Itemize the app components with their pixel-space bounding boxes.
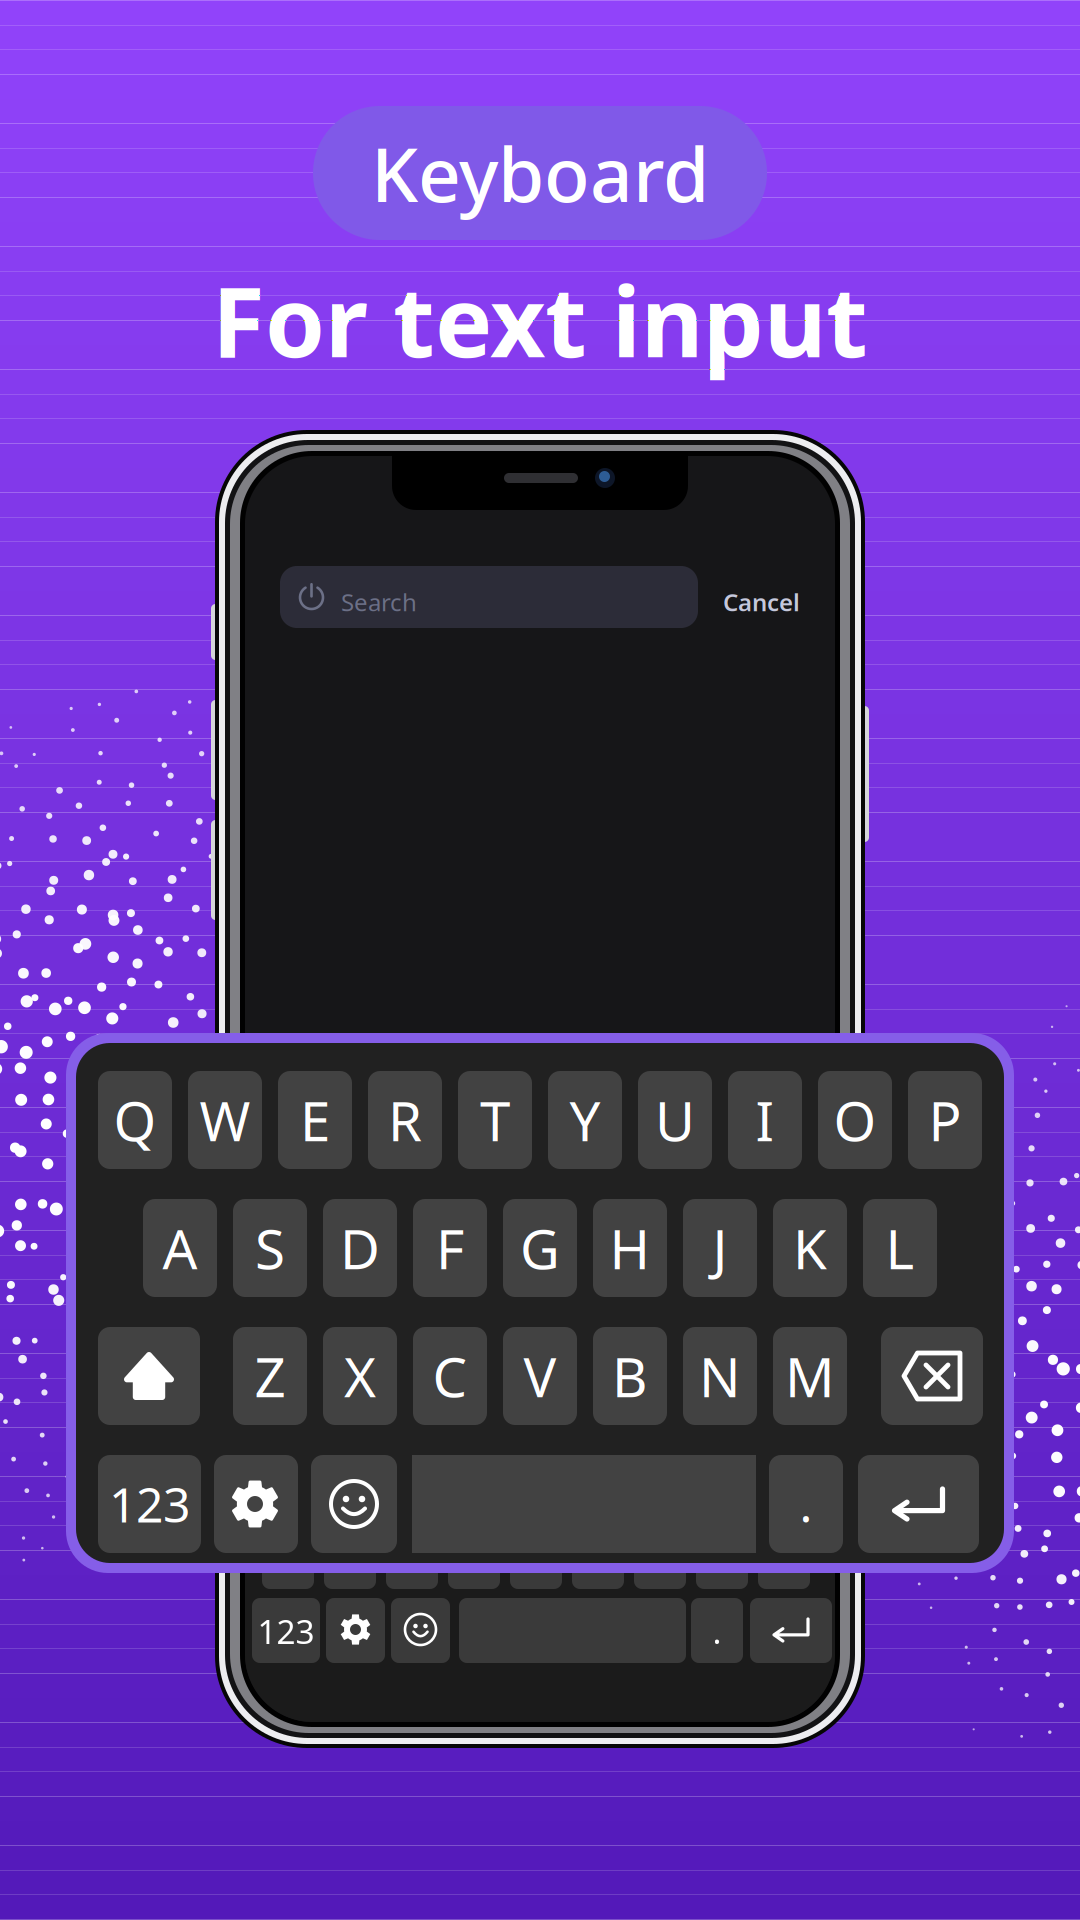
button[interactable]: F: [413, 1199, 487, 1297]
staticText: M: [785, 1340, 835, 1412]
button[interactable]: Settings: [214, 1455, 298, 1553]
button[interactable]: X: [323, 1327, 397, 1425]
staticText: Y: [569, 1084, 600, 1156]
staticText: C: [432, 1340, 467, 1412]
button[interactable]: T: [458, 1071, 532, 1169]
staticText: X: [344, 1340, 376, 1412]
button[interactable]: Z: [233, 1327, 307, 1425]
staticText: D: [340, 1212, 380, 1284]
staticText: B: [612, 1340, 648, 1412]
staticText: V: [523, 1340, 556, 1412]
button[interactable]: C: [413, 1327, 487, 1425]
button[interactable]: N: [683, 1327, 757, 1425]
button[interactable]: R: [368, 1071, 442, 1169]
staticText: H: [609, 1212, 650, 1284]
button[interactable]: S: [233, 1199, 307, 1297]
button[interactable]: A: [143, 1199, 217, 1297]
staticText: K: [793, 1212, 827, 1284]
button[interactable]: V: [503, 1327, 577, 1425]
button[interactable]: 123: [98, 1455, 201, 1553]
staticText: .: [712, 1609, 721, 1653]
staticText: J: [712, 1212, 727, 1284]
button[interactable]: O: [818, 1071, 892, 1169]
staticText: O: [833, 1084, 876, 1156]
staticText: Q: [113, 1084, 156, 1156]
button[interactable]: D: [323, 1199, 397, 1297]
button[interactable]: J: [683, 1199, 757, 1297]
button[interactable]: G: [503, 1199, 577, 1297]
button[interactable]: B: [593, 1327, 667, 1425]
staticText: Keyboard: [371, 123, 709, 223]
button[interactable]: Shift: [98, 1327, 200, 1425]
button[interactable]: Cancel: [723, 586, 819, 618]
button[interactable]: M: [773, 1327, 847, 1425]
button[interactable]: W: [188, 1071, 262, 1169]
staticText: N: [699, 1340, 741, 1412]
button[interactable]: Return: [858, 1455, 979, 1553]
staticText: .: [799, 1472, 812, 1536]
button[interactable]: P: [908, 1071, 982, 1169]
button[interactable]: E: [278, 1071, 352, 1169]
button[interactable]: L: [863, 1199, 937, 1297]
staticText: W: [199, 1084, 250, 1156]
staticText: Cancel: [723, 586, 800, 618]
staticText: For text input: [212, 256, 868, 384]
staticText: G: [520, 1212, 560, 1284]
staticText: R: [388, 1084, 422, 1156]
staticText: P: [928, 1084, 961, 1156]
button[interactable]: I: [728, 1071, 802, 1169]
staticText: E: [300, 1084, 330, 1156]
staticText: 123: [257, 1609, 314, 1653]
button[interactable]: K: [773, 1199, 847, 1297]
staticText: 123: [109, 1472, 190, 1536]
staticText: Search: [341, 586, 417, 618]
staticText: I: [755, 1084, 774, 1156]
button[interactable]: Y: [548, 1071, 622, 1169]
button[interactable]: Q: [98, 1071, 172, 1169]
staticText: L: [885, 1212, 914, 1284]
button[interactable]: Keyboard: [313, 106, 767, 240]
staticText: F: [436, 1212, 464, 1284]
button[interactable]: Emoji: [311, 1455, 397, 1553]
button[interactable]: H: [593, 1199, 667, 1297]
button[interactable]: .: [769, 1455, 843, 1553]
staticText: Z: [254, 1340, 285, 1412]
staticText: S: [255, 1212, 285, 1284]
button[interactable]: Delete: [881, 1327, 983, 1425]
staticText: U: [655, 1084, 695, 1156]
staticText: T: [480, 1084, 510, 1156]
button[interactable]: U: [638, 1071, 712, 1169]
staticText: A: [162, 1212, 197, 1284]
